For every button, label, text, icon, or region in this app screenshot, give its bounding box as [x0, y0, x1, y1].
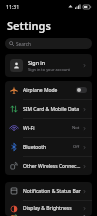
staticText: Notification & Status Bar — [23, 188, 82, 195]
other: Open — [82, 206, 87, 211]
staticText: Display & Brightness — [23, 205, 82, 212]
button[interactable]: Bluetooth — [5, 138, 92, 156]
other: Open — [82, 189, 87, 194]
staticText: Off — [73, 144, 80, 150]
staticText: Not — [72, 125, 80, 131]
button[interactable]: Display & Brightness — [5, 201, 92, 216]
button[interactable]: Airplane Mode — [5, 81, 92, 99]
staticText: Wi-Fi — [23, 125, 72, 132]
button[interactable]: SIM Card & Mobile Data — [5, 100, 92, 118]
staticText: Settings — [7, 18, 51, 33]
staticText: 11:31 — [6, 3, 20, 10]
button[interactable]: Airplane mode toggle — [76, 87, 87, 93]
button[interactable]: Sign in — [5, 54, 92, 77]
staticText: Airplane Mode — [23, 87, 76, 94]
staticText: Search — [16, 41, 31, 47]
staticText: Sign in to your account — [28, 67, 70, 72]
staticText: Other Wireless Connections — [23, 163, 82, 170]
staticText: Sign in — [28, 59, 46, 66]
staticText: Bluetooth — [23, 144, 73, 151]
other: Open — [82, 107, 87, 112]
button[interactable]: Search — [5, 38, 92, 49]
button[interactable]: Notification & Status Bar — [5, 182, 92, 200]
button[interactable]: Other Wireless Connections — [5, 157, 92, 175]
staticText: SIM Card & Mobile Data — [23, 106, 82, 113]
other: Open — [82, 126, 87, 131]
other: Open — [82, 145, 87, 150]
button[interactable]: Wi-Fi — [5, 119, 92, 137]
other: Open — [82, 63, 87, 68]
other: Open — [82, 164, 87, 169]
